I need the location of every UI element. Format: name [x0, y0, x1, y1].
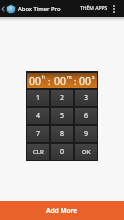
button[interactable]: THÊM APPS [74, 0, 108, 17]
button[interactable]: 6 [75, 108, 97, 124]
button[interactable]: 5 [51, 108, 73, 124]
staticText: 7 [36, 129, 41, 139]
staticText: 4 [36, 111, 41, 121]
staticText: m [67, 74, 72, 81]
button[interactable]: 00 [27, 73, 97, 88]
staticText: OK [82, 148, 91, 156]
button[interactable]: OK [75, 144, 97, 160]
button[interactable]: More options [108, 0, 119, 17]
button[interactable]: 0 [51, 144, 73, 160]
staticText: 0 [60, 147, 65, 157]
staticText: 3 [84, 93, 89, 103]
button[interactable]: CLR [27, 144, 49, 160]
staticText: s [92, 74, 95, 81]
staticText: Abox Timer Pro [18, 5, 61, 13]
staticText: Add More [46, 206, 78, 215]
staticText: 00 [54, 74, 67, 88]
button[interactable]: 1 [27, 90, 49, 106]
button[interactable]: 7 [27, 126, 49, 142]
staticText: CLR [33, 148, 44, 156]
staticText: 6 [84, 111, 89, 121]
button[interactable]: 8 [51, 126, 73, 142]
staticText: 00 [29, 74, 42, 88]
staticText: 2 [60, 93, 65, 103]
staticText: THÊM APPS [80, 5, 108, 12]
staticText: h [42, 74, 46, 81]
button[interactable]: 4 [27, 108, 49, 124]
staticText: 9 [84, 129, 89, 139]
button[interactable]: Add More [0, 201, 124, 220]
staticText: 8 [60, 129, 65, 139]
button[interactable]: 2 [51, 90, 73, 106]
staticText: 5 [60, 111, 65, 121]
staticText: : [74, 75, 77, 87]
button[interactable]: Navigate up [0, 0, 16, 17]
staticText: : [48, 75, 51, 87]
button[interactable]: 3 [75, 90, 97, 106]
staticText: 1 [36, 93, 41, 103]
button[interactable]: 9 [75, 126, 97, 142]
staticText: 00 [79, 74, 92, 88]
